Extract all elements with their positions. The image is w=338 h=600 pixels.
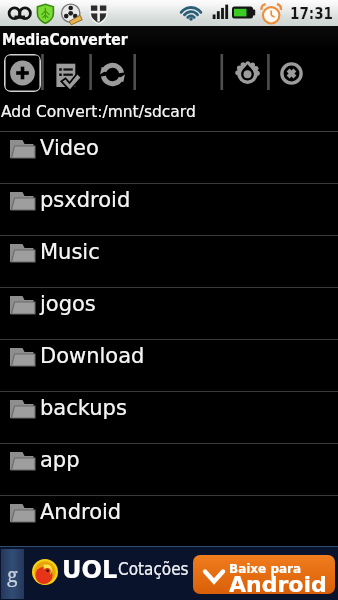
staticText: Music — [40, 240, 100, 264]
staticText: Add Convert:/mnt/sdcard — [1, 103, 196, 121]
staticText: 17:31 — [290, 5, 333, 22]
button[interactable]: Settings — [236, 62, 259, 85]
button[interactable]: Convert list — [55, 62, 81, 88]
staticText: Cotações — [118, 559, 189, 579]
staticText: jogos — [40, 292, 96, 316]
staticText: Video — [40, 136, 99, 160]
button[interactable]: Cancel — [280, 62, 303, 85]
staticText: Android — [229, 572, 327, 594]
staticText: UOL — [62, 556, 118, 584]
button[interactable]: Android — [0, 496, 338, 547]
staticText: Download — [40, 344, 145, 368]
button[interactable]: psxdroid — [0, 184, 338, 235]
staticText: psxdroid — [40, 188, 131, 212]
staticText: g — [7, 561, 18, 588]
button[interactable]: Ad info — [1, 549, 24, 599]
staticText: MediaConverter — [2, 31, 128, 49]
button[interactable]: Download — [0, 340, 338, 391]
button[interactable]: jogos — [0, 288, 338, 339]
button[interactable]: Refresh — [100, 62, 125, 87]
staticText: Baixe para — [229, 562, 302, 576]
button[interactable]: Video — [0, 132, 338, 183]
staticText: app — [40, 448, 80, 472]
button[interactable]: Baixe para — [193, 555, 335, 594]
staticText: Android — [40, 500, 122, 524]
button[interactable]: Add — [4, 54, 41, 92]
button[interactable]: Music — [0, 236, 338, 287]
button[interactable]: app — [0, 444, 338, 495]
staticText: backups — [40, 396, 127, 420]
button[interactable]: backups — [0, 392, 338, 443]
